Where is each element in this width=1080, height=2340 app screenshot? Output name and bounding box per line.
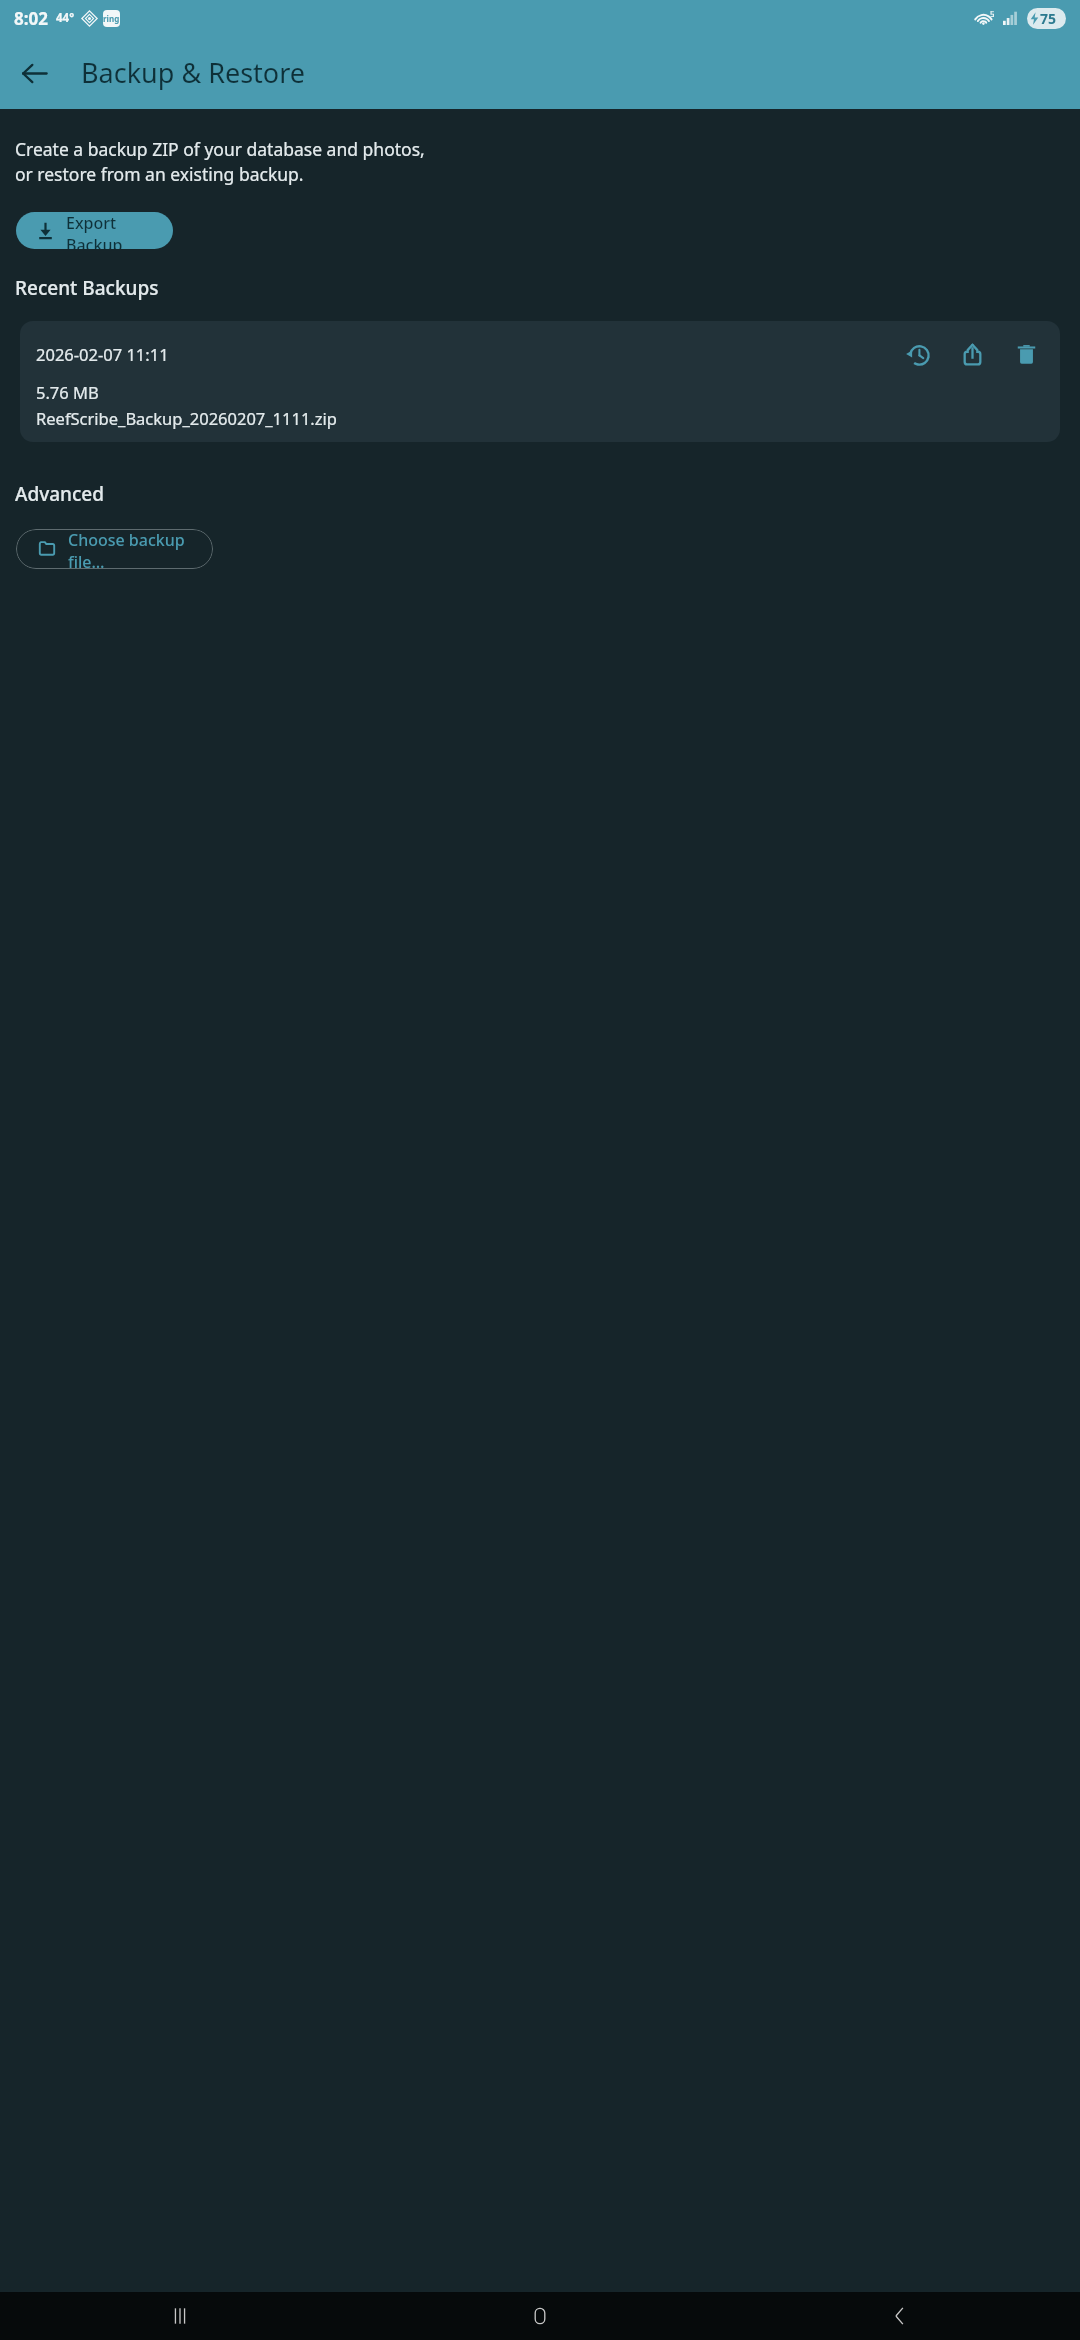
staticText: Export Backup [66,212,173,249]
button[interactable]: Export Backup [16,212,173,249]
button[interactable]: 2026-02-07 11:11 [20,321,1060,442]
staticText: 44° [56,10,75,26]
staticText: Create a backup ZIP of your database and… [15,137,425,161]
staticText: ReefScribe_Backup_20260207_1111.zip [36,407,337,429]
staticText: ring [103,13,120,24]
staticText: or restore from an existing backup. [15,162,304,186]
staticText: Choose backup file… [68,529,213,569]
button[interactable]: Choose backup file… [16,529,213,569]
button[interactable]: Share backup [952,334,992,374]
staticText: 5.76 MB [36,381,99,403]
button[interactable]: Restore backup [898,334,938,374]
staticText: Backup & Restore [81,54,306,91]
staticText: 2026-02-07 11:11 [36,343,169,365]
button[interactable]: Home [360,2292,720,2340]
staticText: 8:02 [14,7,48,30]
staticText: 75 [1040,9,1057,28]
button[interactable]: Recent apps [0,2292,360,2340]
button[interactable]: Back [10,49,58,97]
staticText: Advanced [15,481,105,507]
staticText: Recent Backups [15,275,159,301]
button[interactable]: Delete backup [1006,334,1046,374]
button[interactable]: Back [720,2292,1080,2340]
